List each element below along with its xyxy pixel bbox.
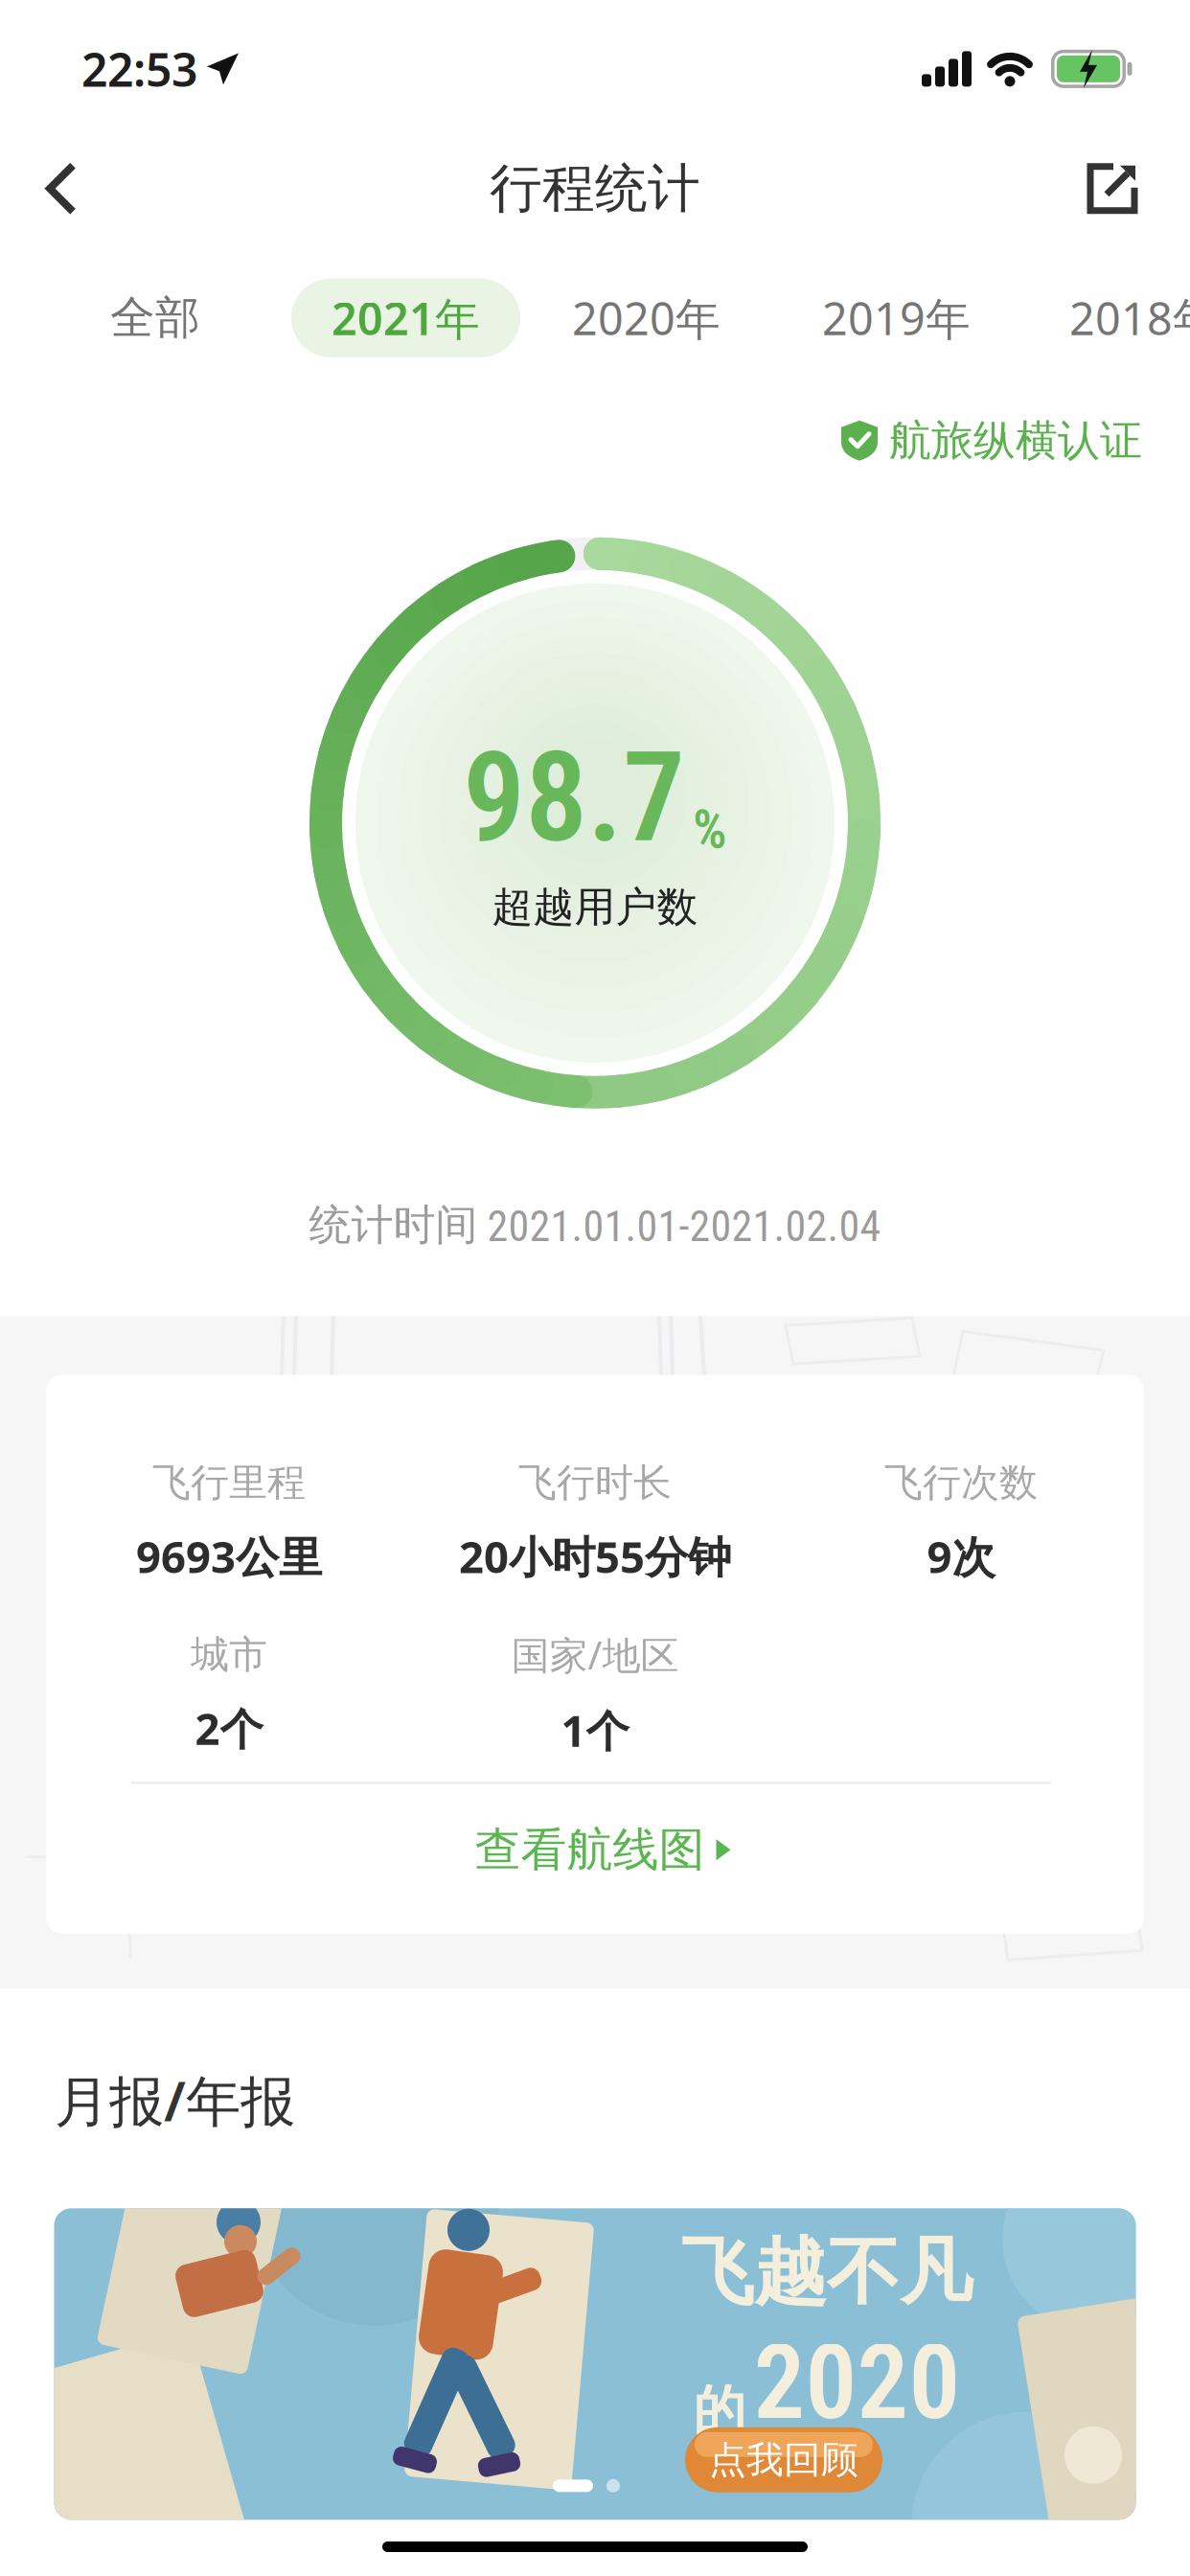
button[interactable]: 2018年 [1069, 288, 1190, 348]
staticText: 22:53 [81, 38, 197, 99]
staticText: 飞越不凡 [681, 2228, 973, 2317]
staticText: 9693公里 [136, 1527, 322, 1585]
staticText: 全部 [110, 290, 200, 345]
button[interactable]: 2019年 [822, 288, 971, 348]
staticText: 1个 [561, 1701, 629, 1759]
button[interactable]: Back [0, 164, 76, 213]
staticText: 2019年 [822, 288, 971, 348]
button[interactable]: Share [1087, 163, 1190, 214]
staticText: 航旅纵横认证 [889, 415, 1142, 466]
button[interactable]: 点我回顾 [685, 2427, 882, 2492]
staticText: 超越用户数 [492, 882, 698, 932]
button[interactable]: 查看航线图 [467, 1822, 723, 1878]
staticText: 2个 [195, 1699, 263, 1757]
staticText: 点我回顾 [709, 2437, 858, 2483]
staticText: 飞行次数 [884, 1459, 1038, 1506]
staticText: % [693, 798, 727, 861]
staticText: 飞行里程 [152, 1459, 306, 1506]
staticText: 2020年 [572, 288, 721, 348]
staticText: 20小时55分钟 [459, 1527, 731, 1585]
staticText: 行程统计 [490, 156, 700, 221]
button[interactable]: 2020年 [572, 288, 721, 348]
staticText: 2018年 [1069, 288, 1190, 348]
button[interactable]: 飞越不凡的2020 点我回顾 [54, 2208, 1136, 2520]
staticText: 9次 [927, 1527, 995, 1585]
staticText: 月报/年报 [55, 2063, 295, 2136]
button[interactable]: 2021年 [291, 279, 520, 357]
staticText: 2020 [754, 2323, 961, 2443]
staticText: 国家/地区 [511, 1629, 679, 1680]
staticText: 2021年 [332, 288, 480, 348]
staticText: 统计时间 2021.01.01-2021.02.04 [309, 1199, 881, 1252]
staticText: 查看航线图 [475, 1822, 705, 1878]
button[interactable]: 全部 [110, 290, 200, 345]
staticText: 城市 [191, 1631, 267, 1678]
staticText: 飞行时长 [518, 1459, 672, 1506]
staticText: 的 [693, 2378, 746, 2443]
staticText: 98.7 [463, 725, 685, 871]
